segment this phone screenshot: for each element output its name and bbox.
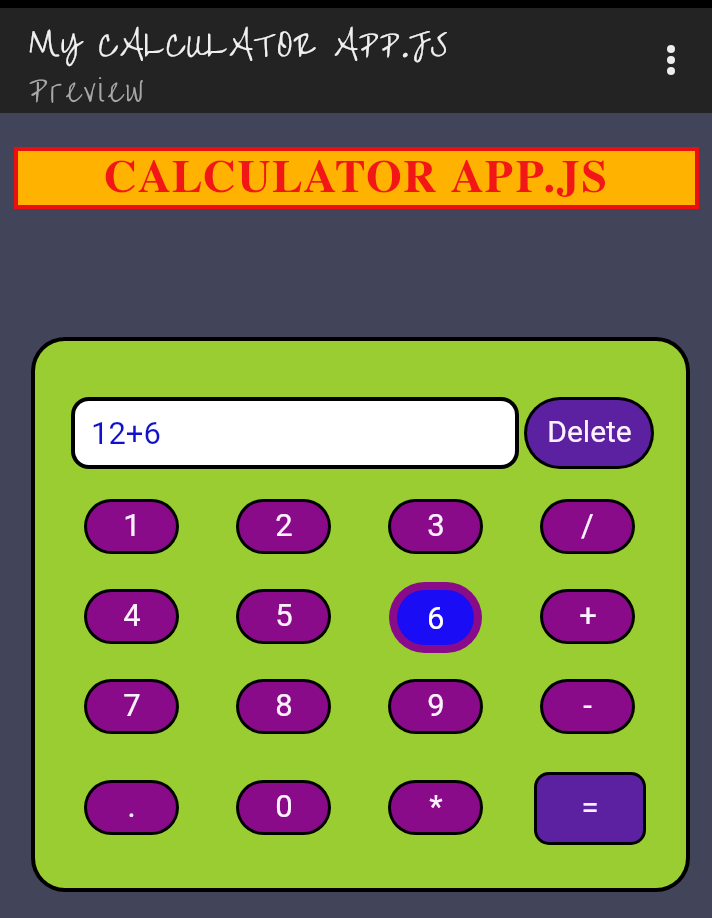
staticText: * [429,788,443,824]
staticText: 4 [123,597,141,633]
staticText: Delete [547,414,632,449]
button[interactable]: 6 [397,590,474,645]
staticText: 9 [427,687,445,723]
button[interactable]: * [391,783,480,832]
button[interactable]: 8 [239,682,328,731]
staticText: . [127,788,136,824]
staticText: = [581,789,599,825]
staticText: + [579,597,597,633]
button[interactable]: 3 [391,502,480,551]
button[interactable]: = [537,775,643,842]
staticText: Preview [29,61,147,122]
button[interactable]: / [543,502,632,551]
staticText: 2 [275,507,293,543]
staticText: / [581,507,594,543]
staticText: 3 [427,507,445,543]
button[interactable]: 7 [87,682,176,731]
button[interactable]: 1 [87,502,176,551]
staticText: - [583,687,592,723]
staticText: MY CALCULATOR APP.JS [29,13,449,78]
button[interactable]: 12+6 [75,401,515,465]
button[interactable]: + [543,592,632,641]
button[interactable]: More options [647,36,695,84]
button[interactable]: Delete [527,400,651,466]
staticText: 5 [275,597,293,633]
staticText: 6 [427,600,445,636]
button[interactable]: - [543,682,632,731]
button[interactable]: 5 [239,592,328,641]
button[interactable]: 9 [391,682,480,731]
staticText: 1 [123,507,141,543]
button[interactable]: 4 [87,592,176,641]
staticText: 7 [123,687,141,723]
staticText: 8 [275,687,293,723]
staticText: CALCULATOR APP.JS [104,155,609,201]
button[interactable]: . [87,783,176,832]
button[interactable]: 0 [239,783,328,832]
staticText: 0 [275,788,293,824]
button[interactable]: CALCULATOR APP.JS [18,151,695,205]
button[interactable]: 2 [239,502,328,551]
staticText: 12+6 [91,415,161,451]
